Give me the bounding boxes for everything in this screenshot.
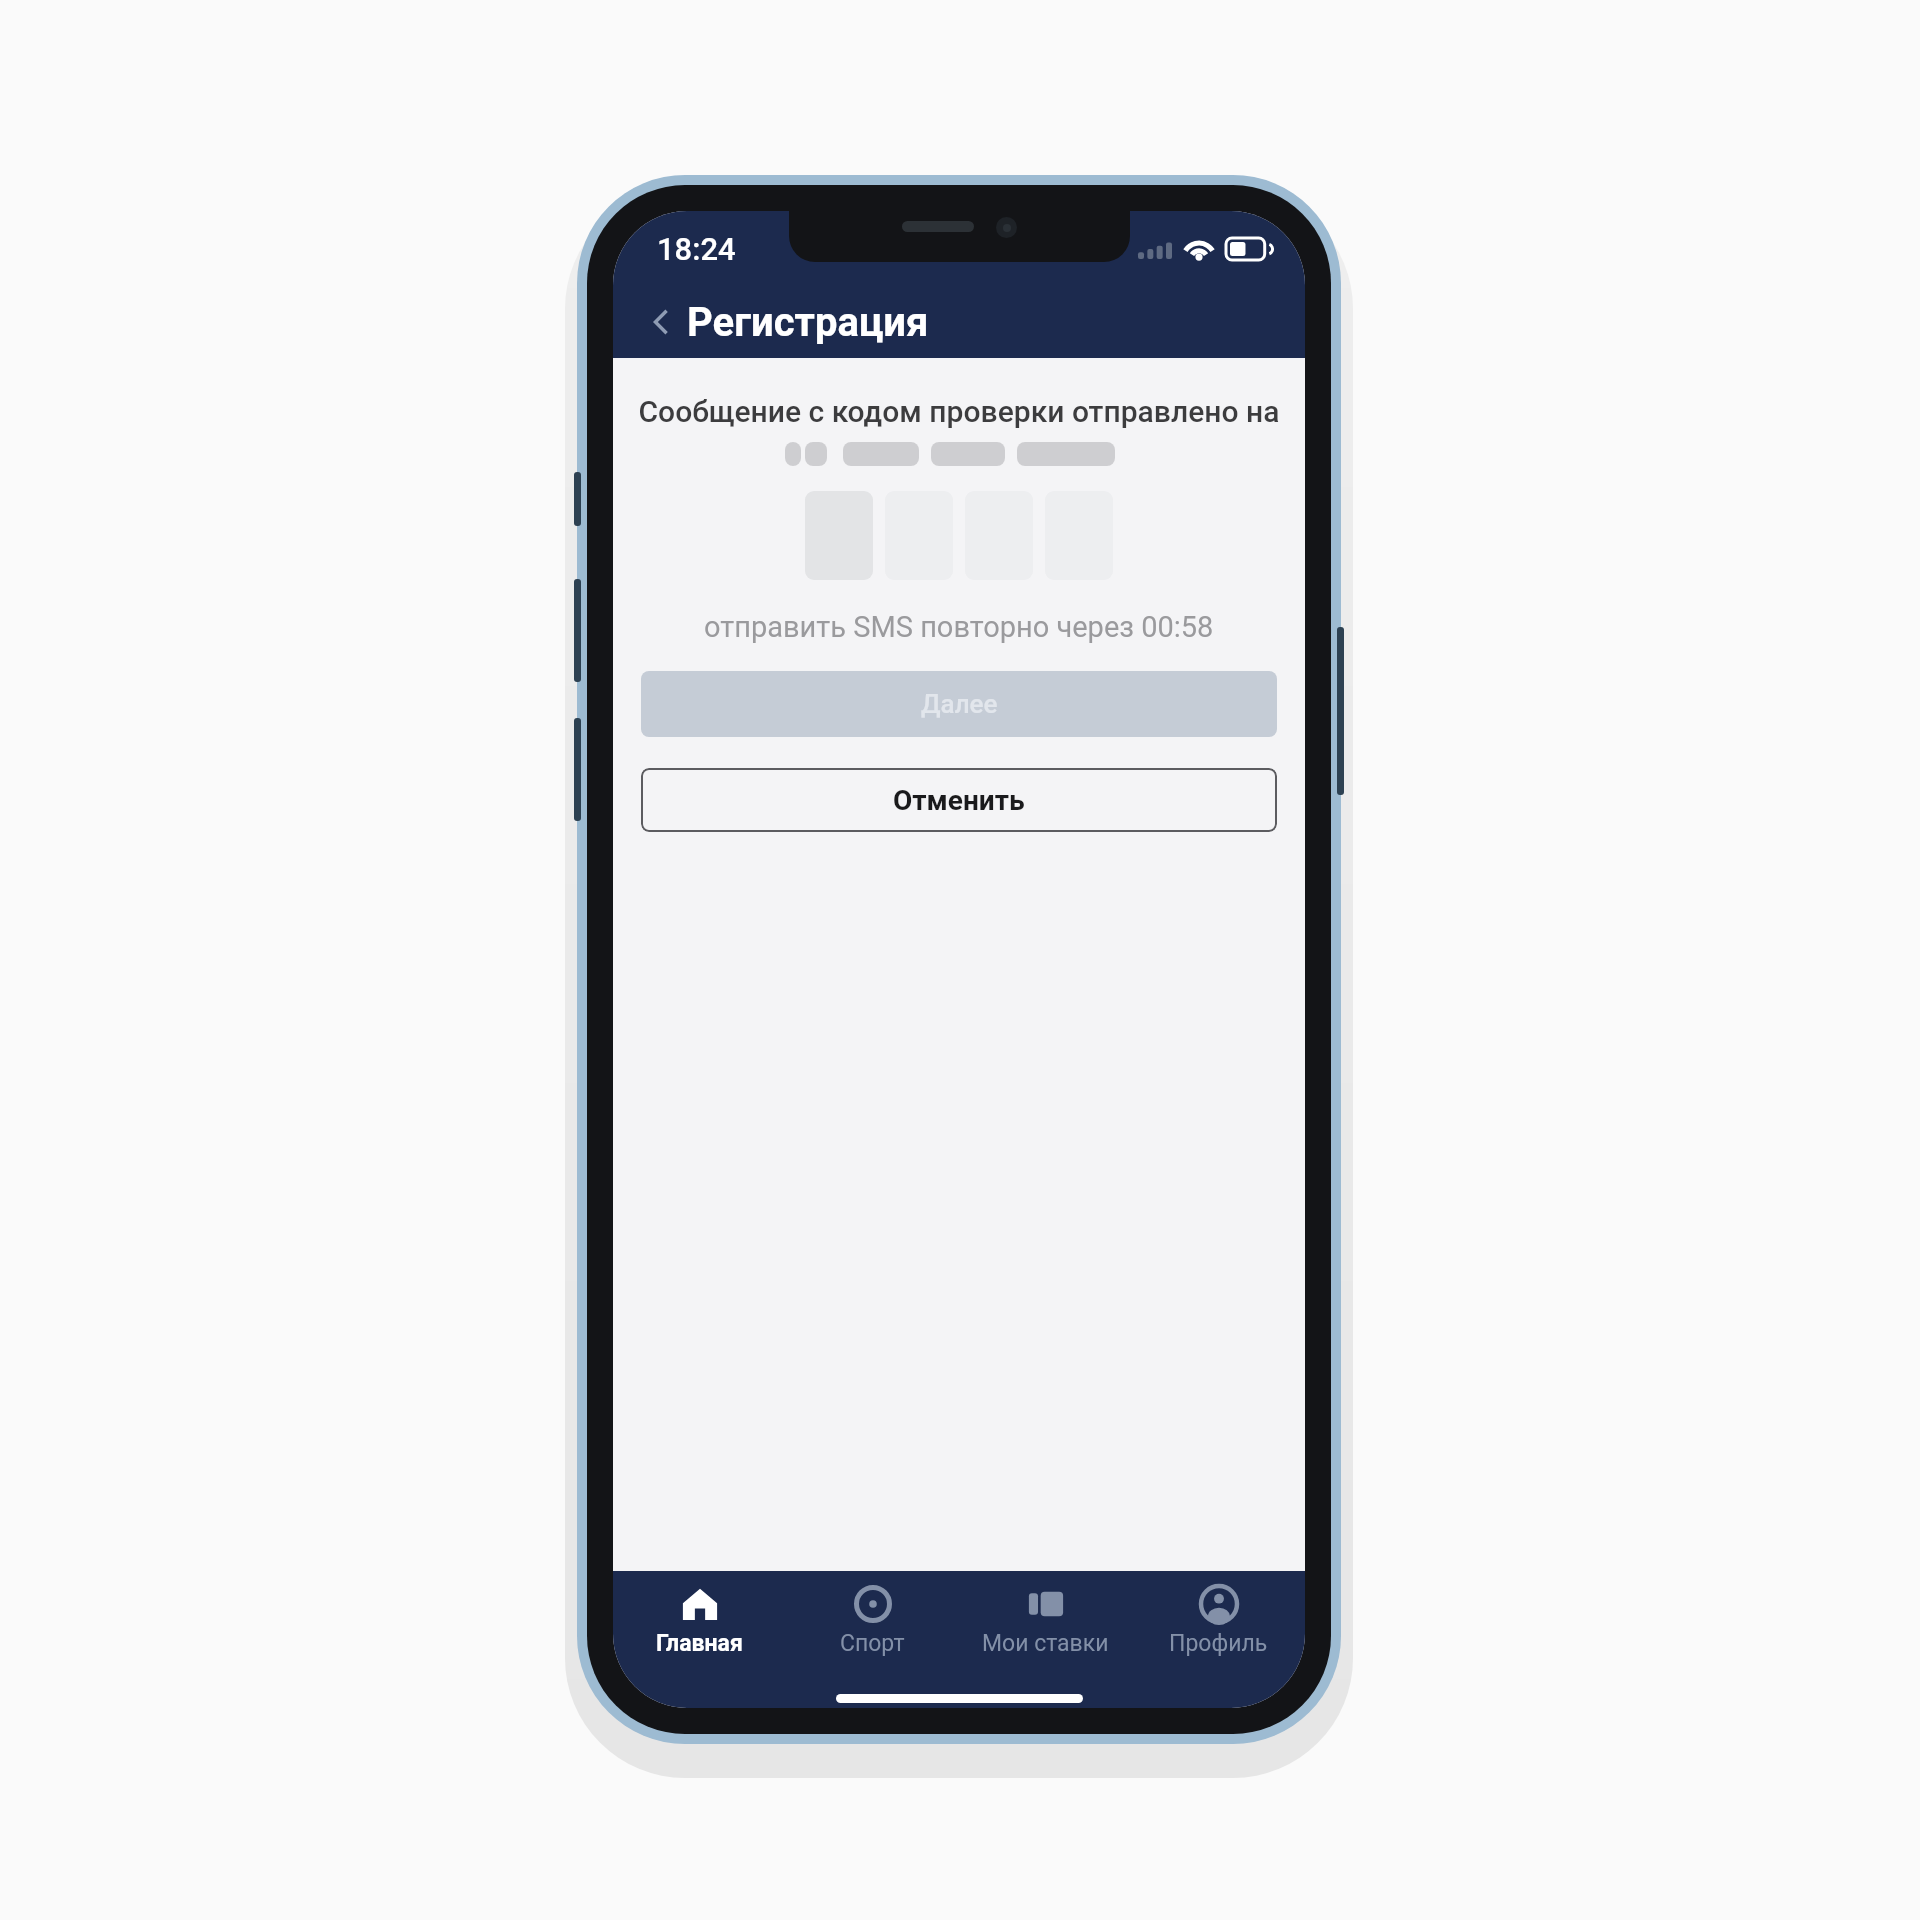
button[interactable]: Спорт [786, 1571, 959, 1671]
button[interactable]: Back [639, 300, 683, 344]
button[interactable]: Далее [641, 671, 1277, 737]
button[interactable]: Отменить [641, 768, 1277, 832]
staticText: Главная [656, 1630, 743, 1657]
staticText: отправить SMS повторно через 00:58 [704, 610, 1214, 644]
button[interactable]: Профиль [1132, 1571, 1305, 1671]
staticText: 18:24 [657, 231, 736, 267]
staticText: Отменить [893, 784, 1025, 817]
staticText: Далее [921, 689, 998, 719]
staticText: Сообщение с кодом проверки отправлено на… [613, 394, 1305, 429]
staticText: Мои ставки [982, 1630, 1109, 1657]
staticText: Спорт [840, 1630, 905, 1657]
staticText: Регистрация [687, 299, 929, 346]
staticText: Профиль [1169, 1630, 1268, 1657]
button[interactable]: Главная [613, 1571, 786, 1671]
button[interactable]: Мои ставки [959, 1571, 1132, 1671]
